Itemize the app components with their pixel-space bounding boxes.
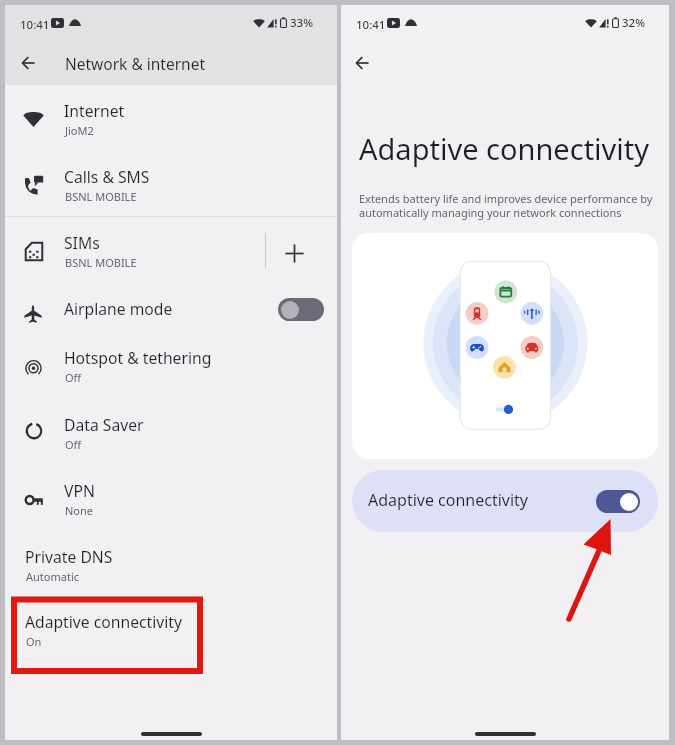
staticText: Airplane mode: [64, 298, 173, 319]
staticText: None: [65, 503, 94, 518]
button[interactable]: Calls & SMS: [5, 156, 337, 209]
staticText: Internet: [64, 100, 125, 121]
button[interactable]: Data Saver: [5, 404, 337, 457]
staticText: BSNL MOBILE: [65, 189, 137, 204]
button[interactable]: Adaptive connectivity: [352, 470, 658, 532]
staticText: Automatic: [26, 569, 79, 584]
button[interactable]: Back: [5, 40, 61, 86]
staticText: Adaptive connectivity: [25, 611, 182, 632]
staticText: VPN: [64, 480, 95, 501]
button[interactable]: Hotspot & tethering: [5, 337, 337, 390]
staticText: Extends battery life and improves device…: [359, 191, 656, 220]
button[interactable]: Airplane mode toggle: [278, 298, 324, 321]
staticText: Private DNS: [25, 546, 113, 567]
staticText: Off: [65, 370, 82, 385]
staticText: Adaptive connectivity: [368, 489, 529, 511]
staticText: 10:41: [356, 17, 386, 33]
staticText: 32%: [622, 15, 645, 31]
staticText: On: [26, 634, 42, 649]
staticText: BSNL MOBILE: [65, 255, 137, 270]
button[interactable]: Back: [5, 40, 337, 86]
staticText: Network & internet: [65, 53, 205, 74]
button[interactable]: Adaptive connectivity toggle: [596, 490, 640, 513]
staticText: JioM2: [65, 123, 94, 138]
staticText: 33%: [290, 15, 313, 31]
staticText: Data Saver: [64, 414, 144, 435]
staticText: Off: [65, 437, 82, 452]
button[interactable]: Adaptive connectivity: [5, 601, 337, 654]
button[interactable]: Back: [340, 41, 384, 85]
staticText: Hotspot & tethering: [64, 347, 212, 368]
staticText: Calls & SMS: [64, 166, 150, 187]
button[interactable]: Airplane mode: [5, 287, 337, 327]
button[interactable]: Internet: [5, 90, 337, 143]
staticText: SIMs: [64, 232, 100, 253]
button[interactable]: VPN: [5, 470, 337, 523]
button[interactable]: Private DNS: [5, 536, 337, 589]
staticText: 10:41: [20, 17, 50, 33]
button[interactable]: SIMs: [5, 222, 337, 275]
button[interactable]: Add SIM: [272, 231, 316, 275]
staticText: Adaptive connectivity: [359, 129, 650, 168]
